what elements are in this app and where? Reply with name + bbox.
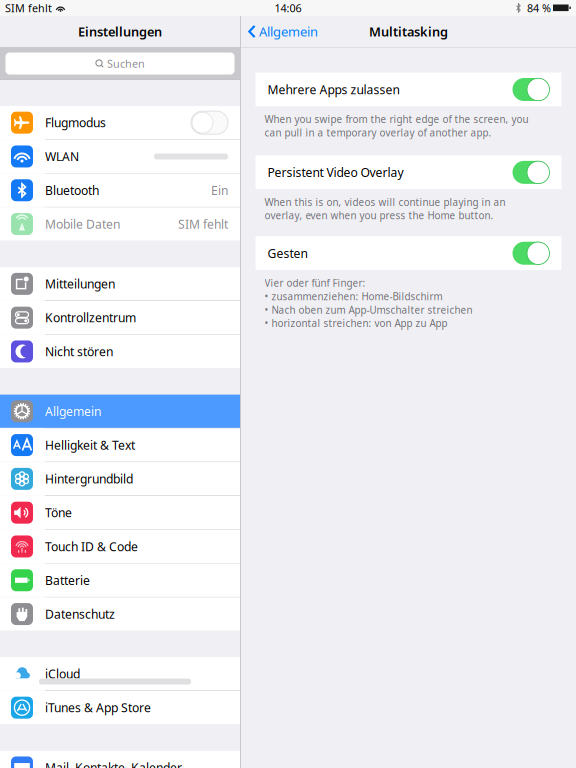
staticText: Mehrere Apps zulassen [267,81,399,98]
staticText: Bluetooth [45,182,99,198]
staticText: Batterie [45,572,90,588]
staticText: SIM fehlt [178,216,228,232]
staticText: WLAN [45,148,79,165]
button[interactable]: Mehrere Apps zulassen [255,72,561,106]
button[interactable]: Mitteilungen [0,267,240,300]
staticText: • horizontal streichen: von App zu App [264,317,447,330]
staticText: Allgemein [259,23,318,40]
staticText: Helligkeit & Text [45,437,135,453]
staticText: Mail, Kontakte, Kalender [45,759,182,768]
button[interactable]: Hintergrundbild [0,462,240,495]
staticText: • zusammenziehen: Home-Bildschirm [264,290,442,303]
button[interactable]: Nicht stören [0,335,240,368]
staticText: Suchen [107,56,145,71]
staticText: Flugmodus [45,114,106,131]
staticText: Multitasking [369,23,448,40]
staticText: Töne [45,504,72,521]
button[interactable]: Datenschutz [0,597,240,631]
staticText: 84 % [527,1,551,15]
staticText: Nicht stören [45,343,113,360]
staticText: • Nach oben zum App-Umschalter streichen [264,303,472,316]
staticText: 14:06 [274,1,301,15]
button[interactable]: Gesten [255,236,561,270]
staticText: Ein [211,182,228,198]
staticText: Mobile Daten [45,216,120,232]
staticText: Touch ID & Code [45,538,138,555]
staticText: Kontrollzentrum [45,309,136,326]
staticText: Persistent Video Overlay [267,164,403,181]
button[interactable]: iTunes & App Store [0,691,240,724]
staticText: iCloud [45,666,80,682]
staticText: Gesten [267,245,307,261]
staticText: Allgemein [45,403,101,419]
button[interactable]: Mobile Daten [0,207,240,241]
staticText: Mitteilungen [45,276,115,292]
staticText: can pull in a temporary overlay of anoth… [264,126,491,139]
staticText: iTunes & App Store [45,699,151,716]
staticText: When you swipe from the right edge of th… [264,112,528,126]
button[interactable]: Allgemein [241,16,318,47]
button[interactable]: Flugmodus [0,106,240,139]
button[interactable]: iCloud [0,657,240,690]
button[interactable]: Bluetooth [0,174,240,207]
button[interactable]: Allgemein [0,395,240,428]
button[interactable]: Kontrollzentrum [0,301,240,334]
staticText: Datenschutz [45,606,115,622]
staticText: SIM fehlt [5,1,52,15]
button[interactable]: Batterie [0,564,240,597]
staticText: When this is on, videos will continue pl… [264,195,505,209]
button[interactable]: Mail, Kontakte, Kalender [0,751,240,768]
staticText: Einstellungen [78,23,162,40]
staticText: overlay, even when you press the Home bu… [264,209,493,222]
button[interactable]: Suchen [5,52,234,74]
staticText: Hintergrundbild [45,471,133,487]
button[interactable]: WLAN [0,140,240,173]
staticText: Vier oder fünf Finger: [264,276,365,290]
button[interactable]: Helligkeit & Text [0,428,240,462]
button[interactable]: Töne [0,496,240,529]
button[interactable]: Persistent Video Overlay [255,155,561,189]
button[interactable]: Touch ID & Code [0,530,240,563]
